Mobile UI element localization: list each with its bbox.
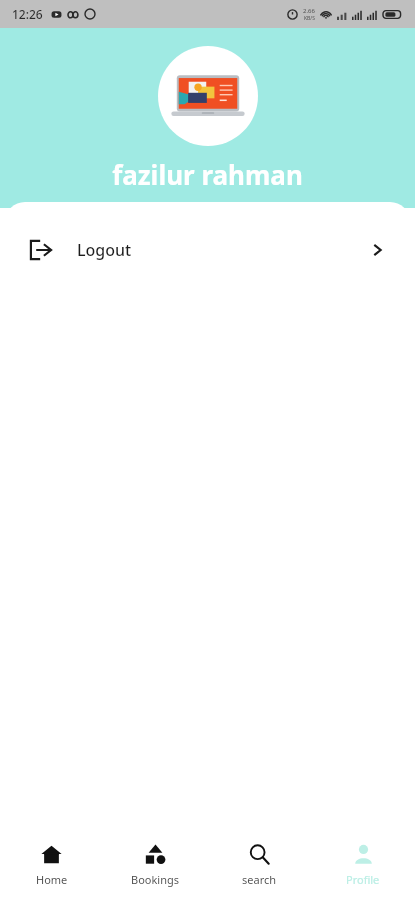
staticText: Profile <box>346 872 380 887</box>
staticText: search <box>242 872 277 887</box>
button[interactable]: Home <box>0 830 103 900</box>
button[interactable]: Profile <box>311 830 415 900</box>
staticText: KB/S <box>304 15 315 22</box>
button[interactable]: Logout <box>5 202 410 298</box>
staticText: Bookings <box>131 872 180 887</box>
button[interactable]: search <box>207 830 311 900</box>
staticText: fazilur rahman <box>112 157 303 192</box>
staticText: Logout <box>77 239 132 261</box>
button[interactable]: Bookings <box>103 830 207 900</box>
staticText: Home <box>36 872 68 887</box>
staticText: 12:26 <box>12 6 43 22</box>
staticText: 2.66 <box>303 7 315 15</box>
